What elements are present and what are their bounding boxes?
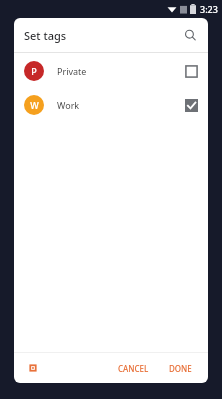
button[interactable]: W [14,91,208,119]
staticText: W [30,99,39,111]
button[interactable]: DONE [163,360,198,377]
button[interactable]: Search [180,25,200,45]
staticText: Private [57,65,185,77]
staticText: P [31,65,37,77]
staticText: 3:23 [200,3,218,15]
staticText: Set tags [24,28,180,43]
button[interactable]: Add tag [24,359,42,377]
staticText: Work [57,99,185,111]
staticText: CANCEL [118,363,149,374]
staticText: DONE [169,363,192,374]
button[interactable]: CANCEL [112,360,155,377]
button[interactable]: P [14,57,208,85]
